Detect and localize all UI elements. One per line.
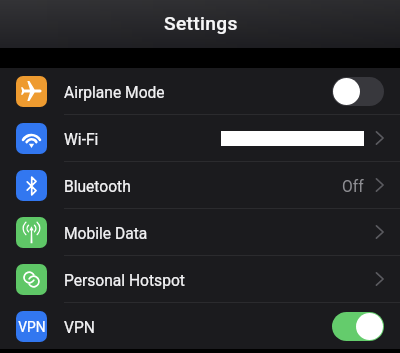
button[interactable]: Bluetooth — [0, 162, 400, 208]
staticText: Bluetooth — [64, 178, 131, 196]
staticText: Personal Hotspot — [64, 272, 185, 290]
button[interactable]: Switch on — [332, 312, 384, 341]
staticText: VPN — [64, 319, 95, 337]
staticText: Airplane Mode — [64, 84, 165, 102]
staticText: Mobile Data — [64, 225, 148, 243]
button[interactable]: Wi-Fi — [0, 115, 400, 161]
staticText: Wi-Fi — [64, 131, 99, 149]
button[interactable]: Mobile Data — [0, 209, 400, 255]
button[interactable]: VPN — [0, 303, 400, 349]
button[interactable]: Airplane Mode — [0, 68, 400, 114]
button[interactable]: Personal Hotspot — [0, 256, 400, 302]
staticText: Settings — [164, 12, 238, 35]
staticText: VPN — [18, 319, 46, 335]
button[interactable]: Switch off — [332, 77, 384, 106]
staticText: Off — [342, 178, 364, 196]
